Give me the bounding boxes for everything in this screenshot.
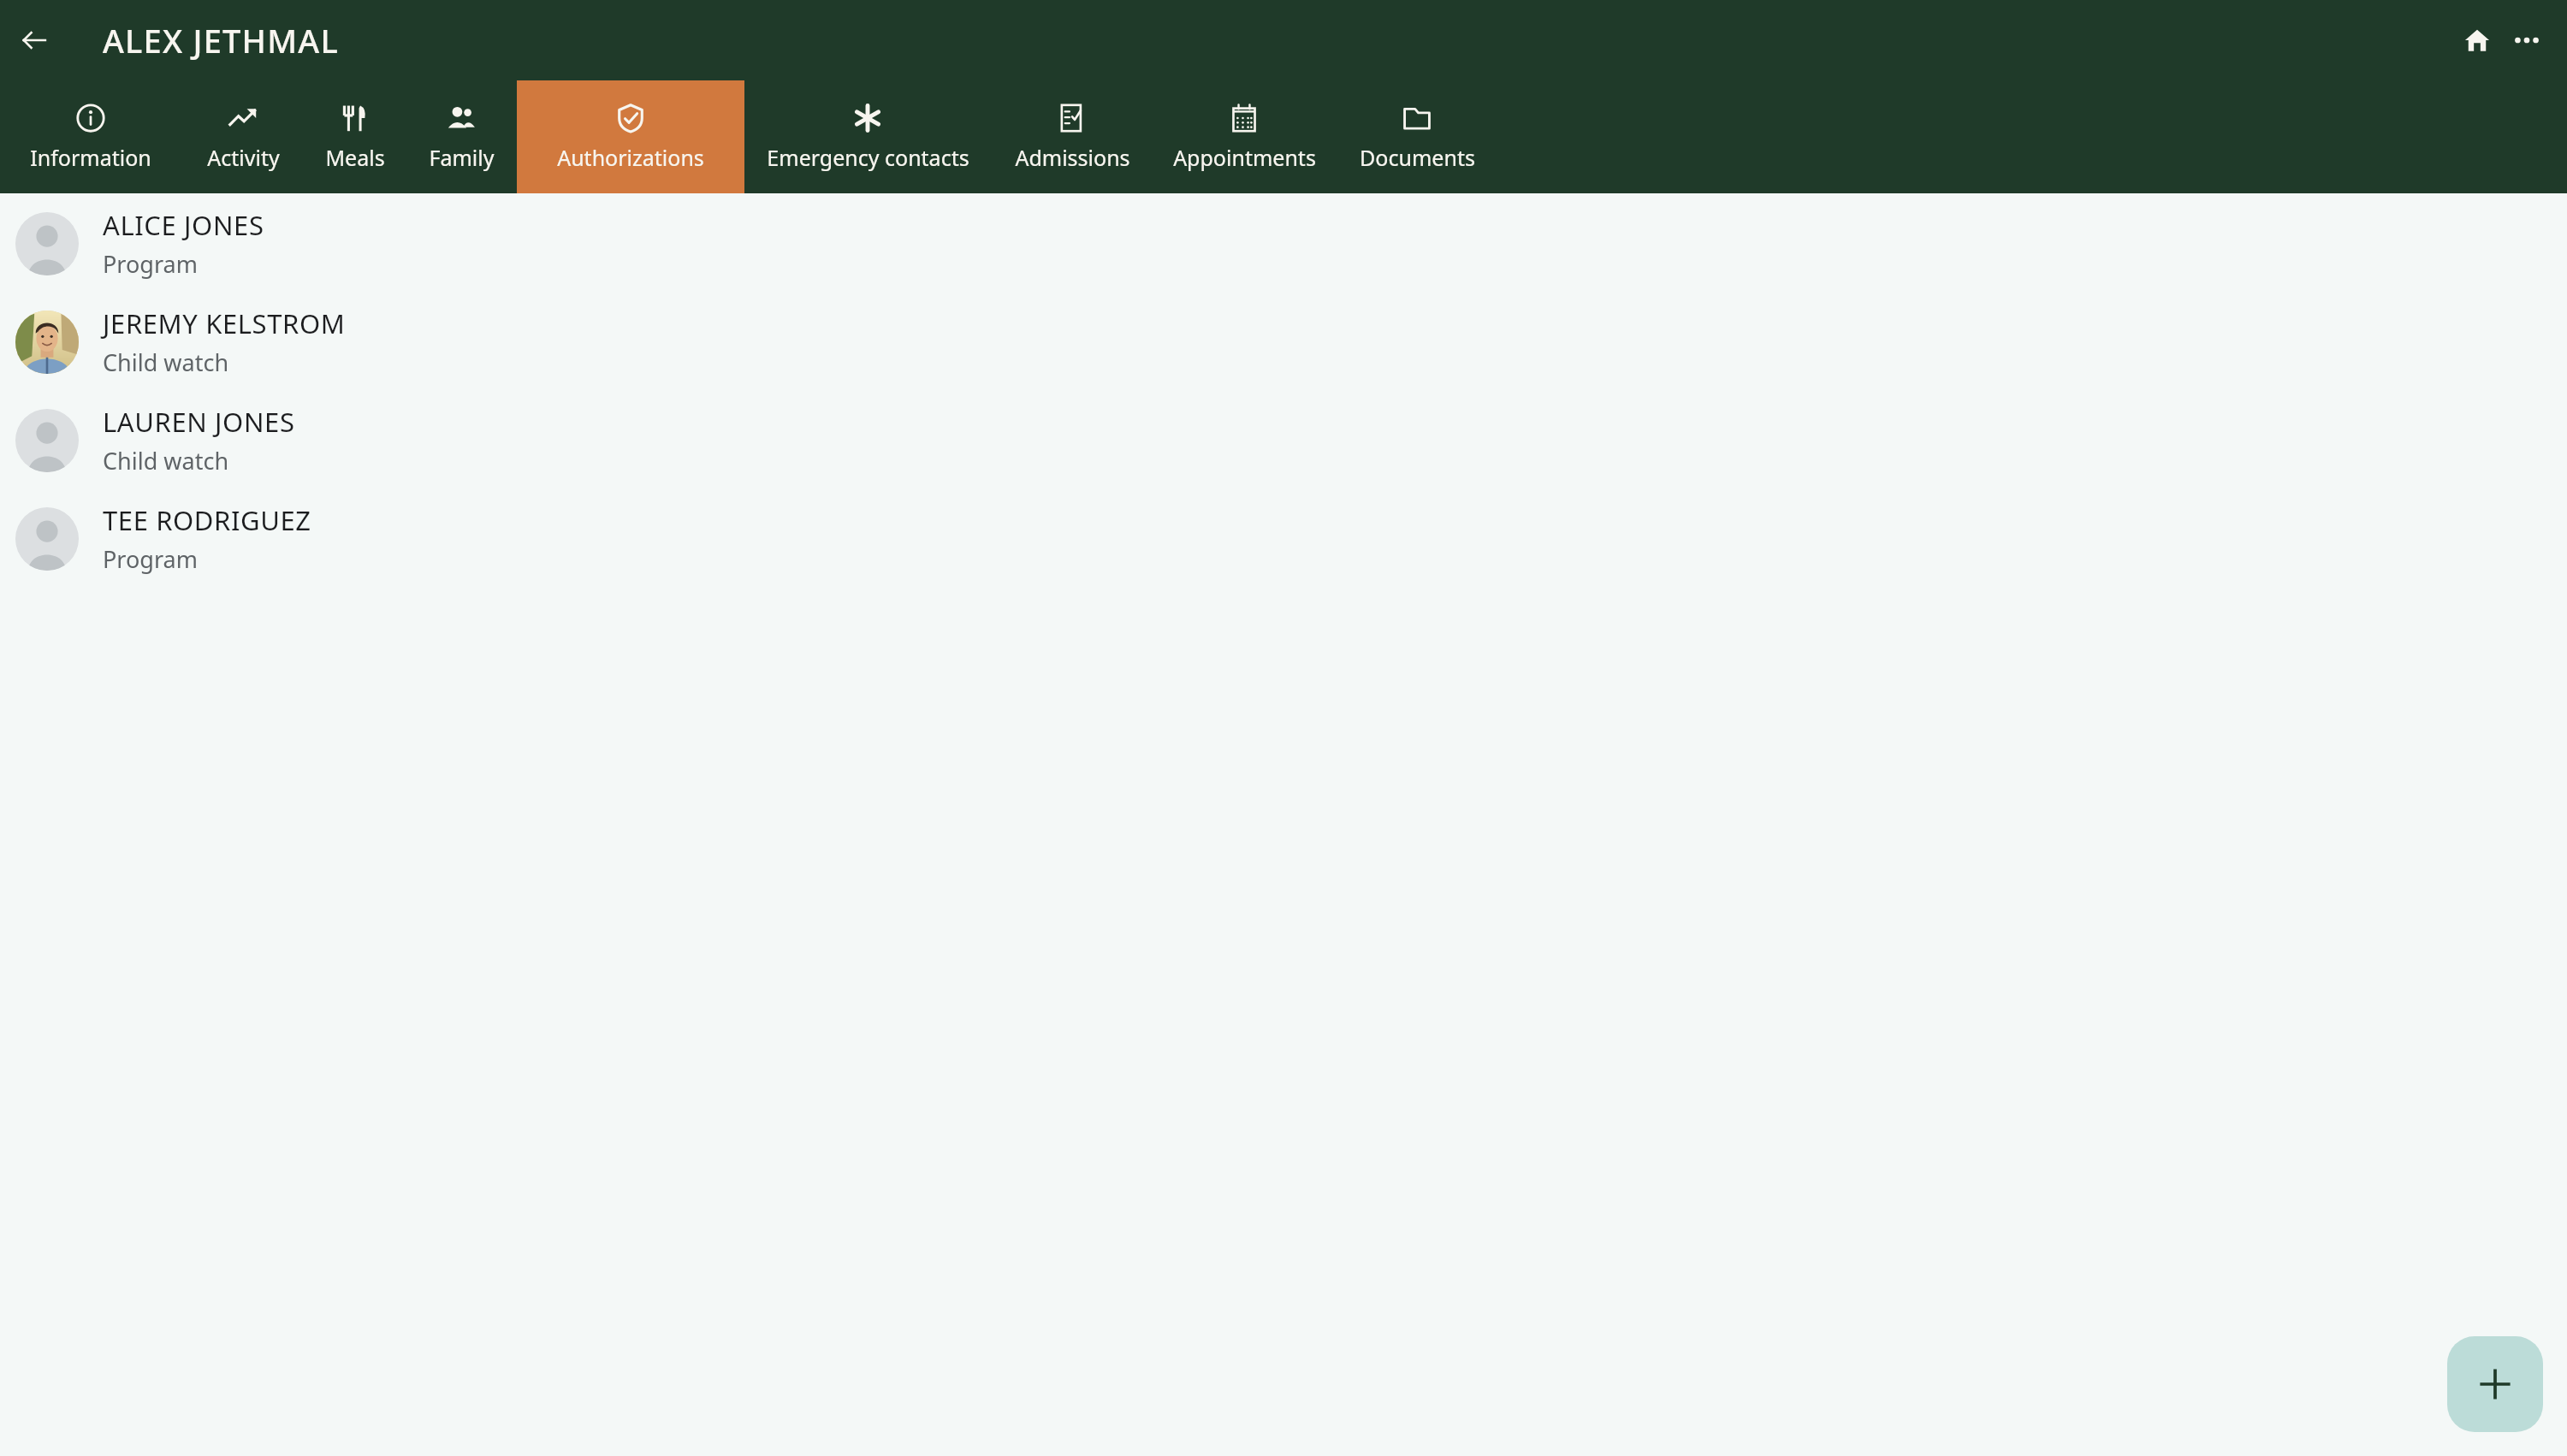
staticText: Meals (325, 143, 385, 172)
button[interactable]: Admissions (991, 80, 1153, 193)
button[interactable]: Information (0, 80, 181, 193)
button[interactable]: Emergency contacts (744, 80, 991, 193)
staticText: Information (30, 143, 151, 172)
staticText: Admissions (1015, 143, 1130, 172)
staticText: Documents (1360, 143, 1475, 172)
staticText: TEE RODRIGUEZ (103, 502, 311, 538)
button[interactable]: JEREMY KELSTROM (0, 293, 2567, 391)
button[interactable]: More options (2502, 15, 2552, 65)
button[interactable]: Meals (305, 80, 406, 193)
staticText: Authorizations (557, 143, 704, 172)
staticText: Emergency contacts (767, 143, 969, 172)
button[interactable]: ALICE JONES (0, 194, 2567, 293)
button[interactable]: LAUREN JONES (0, 391, 2567, 489)
staticText: Family (429, 143, 495, 172)
button[interactable]: Appointments (1153, 80, 1335, 193)
staticText: Activity (207, 143, 280, 172)
button[interactable]: Back (9, 15, 60, 66)
button[interactable]: Home (2452, 15, 2502, 65)
staticText: Child watch (103, 346, 229, 378)
staticText: Child watch (103, 445, 229, 476)
staticText: Program (103, 543, 198, 575)
staticText: Appointments (1173, 143, 1316, 172)
staticText: ALEX JETHMAL (103, 18, 339, 62)
button[interactable]: Activity (181, 80, 305, 193)
button[interactable]: Documents (1335, 80, 1499, 193)
button[interactable]: Add (2447, 1336, 2543, 1432)
staticText: Program (103, 248, 198, 280)
button[interactable]: Authorizations (517, 80, 744, 193)
staticText: JEREMY KELSTROM (103, 305, 346, 341)
button[interactable]: Family (406, 80, 517, 193)
staticText: LAUREN JONES (103, 404, 295, 440)
staticText: ALICE JONES (103, 207, 264, 243)
button[interactable]: TEE RODRIGUEZ (0, 489, 2567, 588)
